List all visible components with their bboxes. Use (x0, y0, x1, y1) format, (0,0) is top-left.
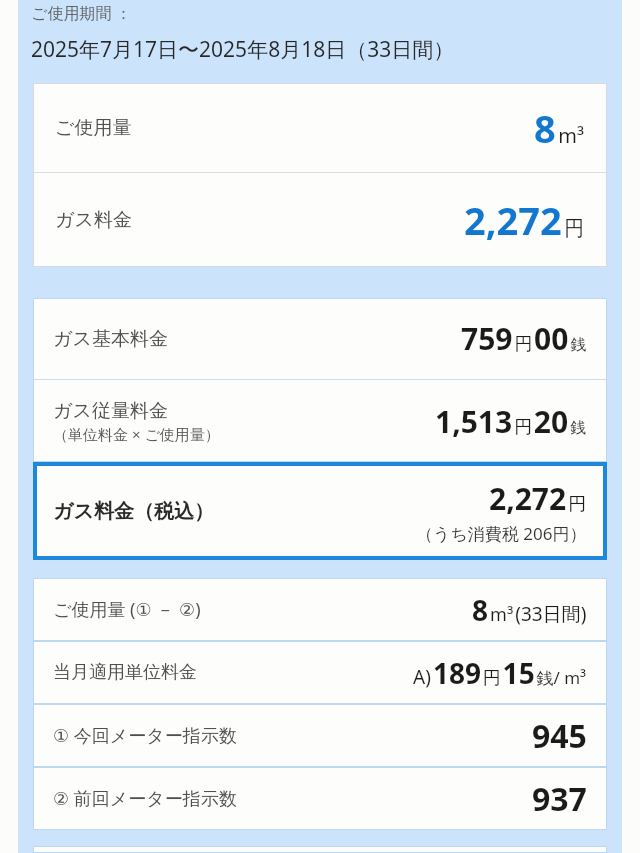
staticText: 8 m³ (33日間) (472, 591, 587, 629)
staticText: ご使用量 (55, 116, 132, 140)
button[interactable]: 当月適用単位料金 (33, 641, 607, 704)
button[interactable]: ガス従量料金 (33, 380, 607, 462)
button[interactable]: ① 今回メーター指示数 (33, 704, 607, 767)
staticText: 759 円 00 銭 (461, 318, 587, 359)
staticText: ガス料金（税込） (53, 499, 214, 524)
staticText: （うち消費税 206円） (416, 522, 587, 545)
staticText: ご使用量 (① － ②) (53, 597, 201, 622)
staticText: 945 (532, 714, 587, 758)
staticText: 2,272 円 (489, 478, 587, 519)
staticText: ガス従量料金 (53, 399, 168, 423)
button[interactable]: ガス料金（税込） (33, 462, 607, 560)
button[interactable]: ガス料金 (33, 173, 607, 267)
staticText: 8 m³ (534, 102, 585, 154)
staticText: A) 189 円 15 銭/ m³ (413, 654, 587, 692)
staticText: ① 今回メーター指示数 (53, 723, 237, 748)
staticText: ② 前回メーター指示数 (53, 786, 237, 811)
staticText: 937 (532, 777, 587, 821)
staticText: （単位料金 × ご使用量） (53, 424, 220, 444)
staticText: 2,272 円 (464, 194, 585, 246)
button[interactable]: ② 前回メーター指示数 (33, 767, 607, 830)
staticText: ガス料金 (55, 208, 132, 232)
button[interactable]: ガス基本料金 (33, 298, 607, 379)
button[interactable]: ご使用量 (① － ②) (33, 578, 607, 641)
button[interactable]: ご使用量 (33, 83, 607, 172)
staticText: 2025年7月17日〜2025年8月18日（33日間） (31, 35, 455, 64)
staticText: 当月適用単位料金 (53, 661, 197, 684)
staticText: 1,513 円 20 銭 (435, 401, 587, 442)
staticText: ガス基本料金 (53, 327, 168, 351)
staticText: ご使用期間 ： (31, 2, 132, 24)
